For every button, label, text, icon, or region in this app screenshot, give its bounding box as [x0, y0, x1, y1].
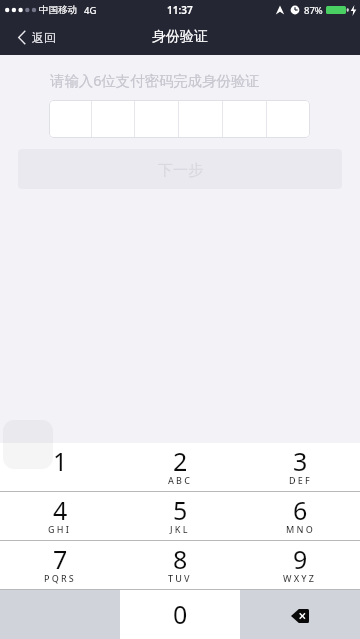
button[interactable]: 6 — [240, 492, 360, 541]
staticText: JKL — [170, 523, 190, 535]
staticText: 87% — [304, 4, 323, 17]
button[interactable]: Password input — [49, 100, 310, 138]
staticText: WXYZ — [283, 572, 317, 584]
button[interactable]: 返回 — [0, 24, 68, 51]
button[interactable]: 0 — [120, 590, 240, 639]
button[interactable]: 7 — [0, 541, 120, 590]
staticText: 返回 — [32, 30, 56, 45]
staticText: 4G — [84, 4, 97, 17]
staticText: 6 — [293, 493, 308, 527]
staticText: 4 — [53, 493, 68, 527]
staticText: 11:37 — [167, 3, 193, 17]
staticText: 中国移动 — [39, 4, 77, 16]
staticText: 0 — [173, 597, 188, 631]
staticText: 1 — [53, 444, 68, 478]
staticText: 请输入6位支付密码完成身份验证 — [50, 71, 260, 91]
staticText: MNO — [286, 523, 315, 535]
staticText: DEF — [289, 474, 312, 486]
button[interactable]: 8 — [120, 541, 240, 590]
button[interactable]: 1 — [0, 443, 120, 492]
button[interactable]: Backspace — [240, 590, 360, 639]
staticText: 8 — [173, 542, 188, 576]
staticText: ABC — [168, 474, 193, 486]
button[interactable]: 5 — [120, 492, 240, 541]
staticText: 9 — [293, 542, 308, 576]
staticText: 下一步 — [158, 161, 203, 180]
staticText: 2 — [173, 444, 188, 478]
staticText: GHI — [48, 523, 72, 535]
button[interactable]: 3 — [240, 443, 360, 492]
staticText: 3 — [293, 444, 308, 478]
staticText: TUV — [168, 572, 192, 584]
button[interactable]: 2 — [120, 443, 240, 492]
staticText: PQRS — [44, 572, 76, 584]
button[interactable]: 9 — [240, 541, 360, 590]
staticText: 7 — [53, 542, 68, 576]
staticText: 身份验证 — [152, 28, 208, 46]
button[interactable]: 4 — [0, 492, 120, 541]
staticText: 5 — [173, 493, 188, 527]
